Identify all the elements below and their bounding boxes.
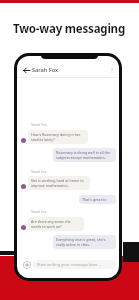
button[interactable]: She is working hard at home to improve m… — [28, 176, 90, 190]
button[interactable]: Are there any areas she needs to work on… — [28, 217, 84, 231]
button[interactable]: That's great to hear. — [79, 195, 116, 204]
staticText: Everything else is great, she's really a… — [56, 237, 113, 247]
button[interactable]: Back — [22, 66, 31, 75]
staticText: Are there any areas she needs to work on… — [31, 219, 81, 229]
button[interactable]: Everything else is great, she's really a… — [53, 235, 116, 249]
staticText: Two-way messaging — [13, 21, 125, 37]
button[interactable]: Rosemary is doing well in all the subjec… — [53, 148, 116, 162]
staticText: That's great to hear. — [82, 197, 113, 202]
button[interactable]: How's Rosemary doing in her studies late… — [28, 130, 88, 144]
staticText: Sarah Fox — [32, 66, 58, 74]
staticText: She is working hard at home to improve m… — [31, 178, 87, 188]
staticText: Start writing your message here... — [37, 262, 101, 267]
staticText: Sarah Fox — [31, 169, 47, 174]
button[interactable]: More options — [108, 66, 116, 74]
staticText: How's Rosemary doing in her studies late… — [31, 132, 85, 142]
staticText: Sarah Fox — [31, 122, 47, 127]
button[interactable]: Start writing your message here... — [33, 260, 116, 269]
staticText: Sarah Fox — [31, 209, 47, 214]
staticText: Rosemary is doing well in all the subjec… — [56, 150, 113, 160]
button[interactable]: Add attachment — [22, 260, 31, 269]
